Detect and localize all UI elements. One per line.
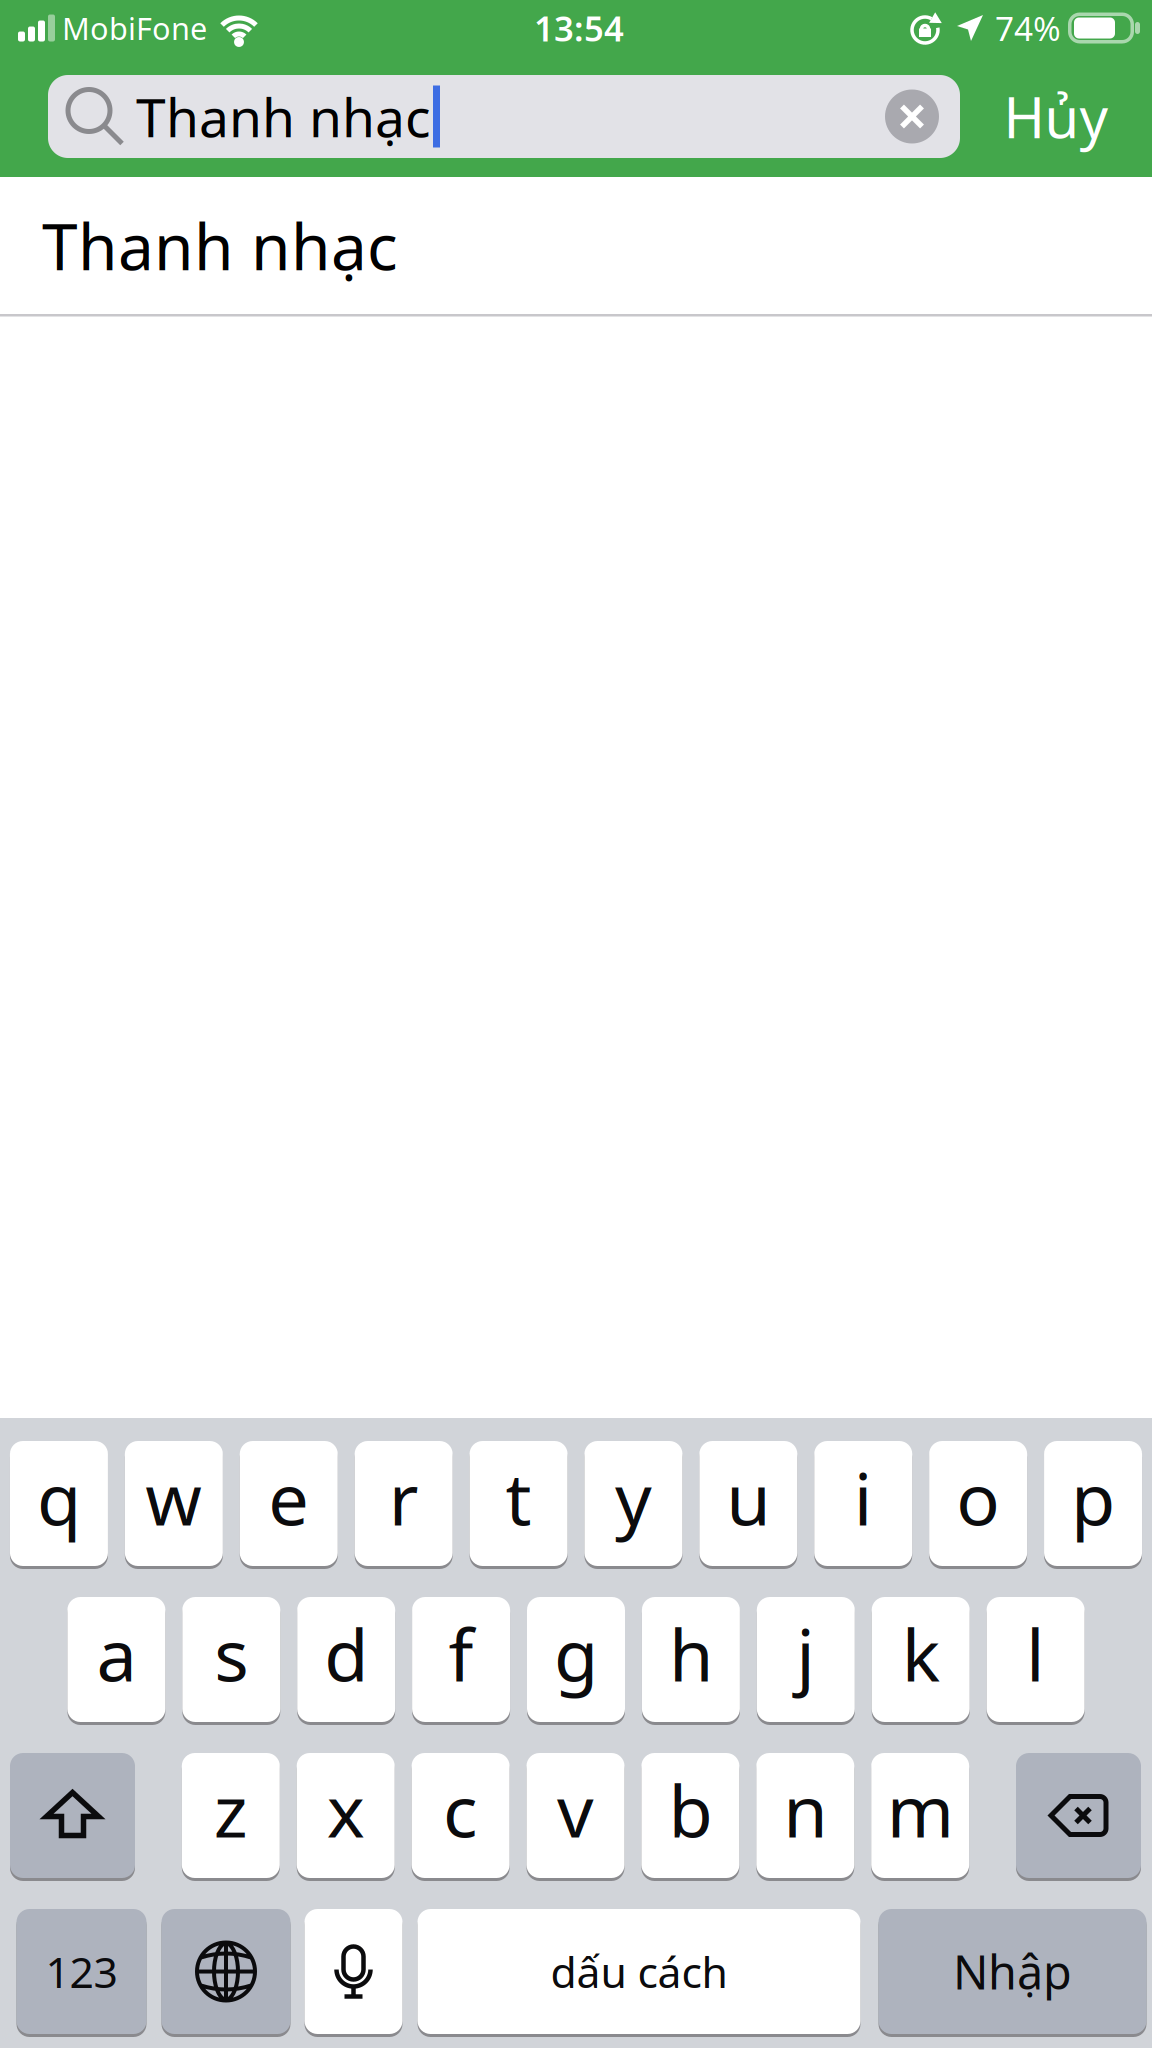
staticText: i — [854, 1450, 873, 1545]
staticText: p — [1071, 1450, 1115, 1545]
staticText: g — [554, 1606, 598, 1701]
button[interactable]: s — [182, 1597, 280, 1722]
staticText: w — [145, 1450, 202, 1545]
button[interactable]: Thanh nhạc — [0, 177, 1152, 314]
staticText: Nhập — [953, 1940, 1072, 2002]
button[interactable]: j — [757, 1597, 855, 1722]
button[interactable]: t — [470, 1441, 568, 1566]
button[interactable]: e — [240, 1441, 338, 1566]
button[interactable]: Clear text — [885, 89, 939, 143]
staticText: q — [37, 1450, 81, 1545]
button[interactable]: Numbers — [16, 1909, 146, 2034]
button[interactable]: Hủy — [960, 66, 1152, 166]
staticText: a — [96, 1606, 136, 1701]
button[interactable]: v — [526, 1753, 624, 1878]
button[interactable]: g — [527, 1597, 625, 1722]
button[interactable]: l — [987, 1597, 1085, 1722]
button[interactable]: i — [814, 1441, 912, 1566]
button[interactable]: f — [412, 1597, 510, 1722]
staticText: x — [327, 1762, 365, 1857]
staticText: h — [669, 1606, 713, 1701]
staticText: u — [726, 1450, 770, 1545]
staticText: 13:54 — [534, 5, 624, 51]
staticText: v — [557, 1762, 594, 1857]
staticText: s — [214, 1606, 248, 1701]
staticText: dấu cách — [550, 1943, 727, 2000]
staticText: f — [449, 1606, 474, 1701]
staticText: Thanh nhạc — [136, 81, 431, 152]
staticText: n — [783, 1762, 827, 1857]
staticText: 123 — [45, 1943, 117, 2000]
staticText: e — [268, 1450, 309, 1545]
staticText: k — [902, 1606, 940, 1701]
staticText: j — [796, 1606, 815, 1701]
staticText: b — [668, 1762, 712, 1857]
staticText: o — [956, 1450, 1000, 1545]
staticText: c — [443, 1762, 478, 1857]
button[interactable]: k — [872, 1597, 970, 1722]
button[interactable]: z — [182, 1753, 280, 1878]
button[interactable]: Nhập — [878, 1909, 1146, 2034]
button[interactable]: Delete — [1016, 1753, 1141, 1878]
staticText: 74% — [995, 6, 1061, 50]
button[interactable]: m — [871, 1753, 969, 1878]
button[interactable]: n — [756, 1753, 854, 1878]
button[interactable]: y — [584, 1441, 682, 1566]
staticText: d — [324, 1606, 368, 1701]
staticText: t — [506, 1450, 532, 1545]
button[interactable]: o — [929, 1441, 1027, 1566]
button[interactable]: c — [412, 1753, 510, 1878]
button[interactable]: h — [642, 1597, 740, 1722]
button[interactable]: w — [125, 1441, 223, 1566]
button[interactable]: Dictation — [304, 1909, 402, 2034]
button[interactable]: Shift — [10, 1753, 135, 1878]
staticText: Hủy — [1003, 79, 1108, 154]
button[interactable]: u — [699, 1441, 797, 1566]
button[interactable]: b — [641, 1753, 739, 1878]
button[interactable]: q — [10, 1441, 108, 1566]
button[interactable]: a — [67, 1597, 165, 1722]
staticText: z — [214, 1762, 248, 1857]
staticText: r — [389, 1450, 419, 1545]
staticText: Thanh nhạc — [42, 203, 398, 288]
button[interactable]: d — [297, 1597, 395, 1722]
button[interactable]: Next keyboard — [161, 1909, 290, 2034]
button[interactable]: r — [355, 1441, 453, 1566]
button[interactable]: dấu cách — [417, 1909, 860, 2034]
staticText: m — [887, 1762, 954, 1857]
staticText: MobiFone — [62, 8, 207, 48]
button[interactable]: x — [297, 1753, 395, 1878]
staticText: y — [615, 1450, 652, 1545]
button[interactable]: p — [1044, 1441, 1142, 1566]
staticText: l — [1026, 1606, 1045, 1701]
